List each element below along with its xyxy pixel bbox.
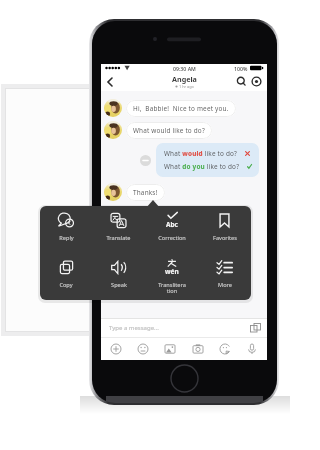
button[interactable]: Speak (92, 253, 145, 300)
staticText: Hi, Babbie! Nice to meet you. (133, 104, 229, 113)
button[interactable]: Search (235, 75, 248, 88)
button[interactable]: wén (145, 253, 198, 300)
button[interactable]: What would like to do? (126, 122, 212, 139)
button[interactable]: Emoji (136, 342, 150, 356)
button[interactable]: Favorites (198, 206, 251, 253)
staticText: 1 hr ago (179, 84, 194, 89)
button[interactable]: Thanks! (126, 184, 165, 201)
staticText: Reply (59, 234, 74, 242)
button[interactable]: Reply (40, 206, 92, 253)
button[interactable]: Add (109, 342, 123, 356)
button[interactable]: Collapse (140, 155, 151, 166)
button[interactable]: More (198, 253, 251, 300)
button[interactable]: Camera (191, 342, 205, 356)
staticText: Correction (158, 234, 186, 242)
button[interactable]: What would like to do? (156, 143, 259, 177)
staticText: Translitera tion (158, 281, 186, 295)
button[interactable]: Sticker (218, 342, 232, 356)
staticText: What do you like to do? (164, 162, 240, 171)
staticText: Translate (106, 234, 131, 242)
button[interactable]: Voice (245, 342, 259, 356)
button[interactable]: Hi, Babbie! Nice to meet you. (126, 100, 236, 117)
staticText: Favorites (213, 234, 237, 242)
button[interactable]: Translate (250, 323, 261, 334)
staticText: 100% (234, 65, 248, 72)
button[interactable]: Translate (92, 206, 145, 253)
staticText: What would like to do? (164, 149, 238, 158)
button[interactable]: Photos (163, 342, 177, 356)
staticText: Thanks! (133, 188, 158, 197)
button[interactable]: Back (103, 75, 117, 89)
staticText: 09:30 AM (173, 65, 196, 72)
staticText: Speak (111, 281, 127, 289)
staticText: Abc (166, 220, 178, 229)
staticText: Type a message... (109, 324, 159, 332)
staticText: More (218, 281, 232, 289)
staticText: wén (165, 267, 179, 276)
staticText: Copy (59, 281, 73, 289)
button[interactable]: Info (250, 75, 263, 88)
button[interactable]: Copy (40, 253, 92, 300)
staticText: Angela (172, 74, 197, 84)
staticText: What would like to do? (133, 126, 205, 135)
button[interactable]: Abc (145, 206, 198, 253)
